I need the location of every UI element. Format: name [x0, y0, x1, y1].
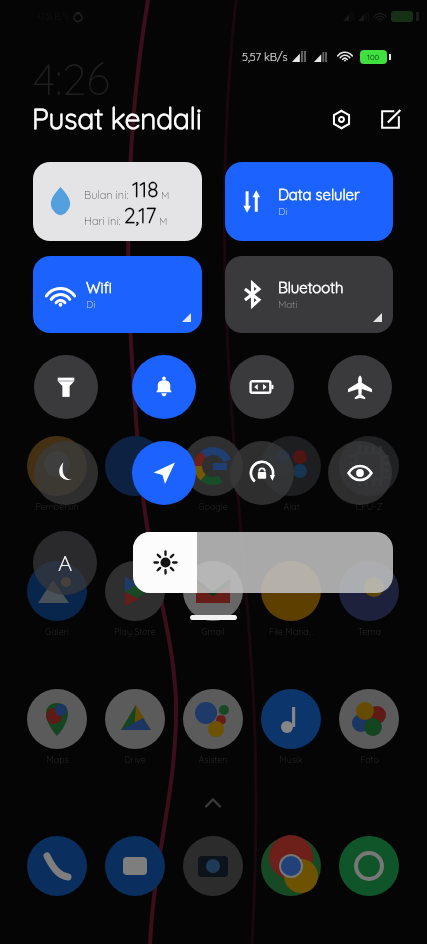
staticText: Gmail [201, 626, 225, 637]
button[interactable]: Bluetooth [225, 256, 393, 333]
staticText: Hari ini: [84, 214, 121, 228]
staticText: Pembersih [35, 501, 79, 512]
staticText: M [161, 189, 170, 202]
staticText: Wifi [86, 278, 112, 297]
staticText: Pusat kendali [32, 101, 202, 136]
button[interactable]: Auto rotate [230, 441, 294, 505]
staticText: Foto [360, 754, 379, 765]
staticText: Alat [283, 501, 300, 512]
staticText: File Mana... [269, 626, 313, 637]
button[interactable]: Notifications [132, 355, 196, 419]
button[interactable]: Wifi [33, 256, 202, 333]
staticText: Play Store [114, 626, 156, 637]
button[interactable]: Battery saver [230, 355, 294, 419]
button[interactable]: Data seluler [225, 162, 393, 241]
staticText: Galeri [45, 626, 69, 637]
button[interactable]: Settings [326, 104, 356, 134]
button[interactable]: Auto brightness [33, 531, 97, 595]
staticText: 2,17 [124, 202, 157, 228]
staticText: Musik [279, 754, 303, 765]
button[interactable]: Dark mode [34, 441, 98, 505]
staticText: Drive [124, 754, 146, 765]
staticText: Data seluler [278, 185, 360, 204]
staticText: Mati [278, 298, 298, 311]
button[interactable]: Location [132, 441, 196, 505]
staticText: 4:26 [33, 51, 110, 106]
staticText: M [159, 215, 168, 228]
staticText: Asisten [198, 754, 228, 765]
staticText: 5,57 kB/s [242, 50, 288, 64]
staticText: Di [278, 205, 288, 218]
staticText: CPU-Z [355, 501, 383, 512]
staticText: Bluetooth [278, 278, 344, 297]
button[interactable]: Flashlight [34, 355, 98, 419]
button[interactable]: Eye comfort [328, 441, 392, 505]
staticText: 100 [367, 52, 380, 62]
staticText: Maps [46, 754, 69, 765]
staticText: Tema [358, 626, 381, 637]
staticText: Bulan ini: [84, 188, 129, 202]
staticText: Di [86, 298, 96, 311]
button[interactable]: Edit [375, 104, 405, 134]
staticText: Google [198, 501, 228, 512]
button[interactable]: Brightness [133, 532, 393, 593]
staticText: 118 [132, 176, 159, 202]
button[interactable]: Bulan ini: [33, 162, 202, 241]
staticText: A [58, 549, 73, 577]
button[interactable]: Airplane mode [328, 355, 392, 419]
